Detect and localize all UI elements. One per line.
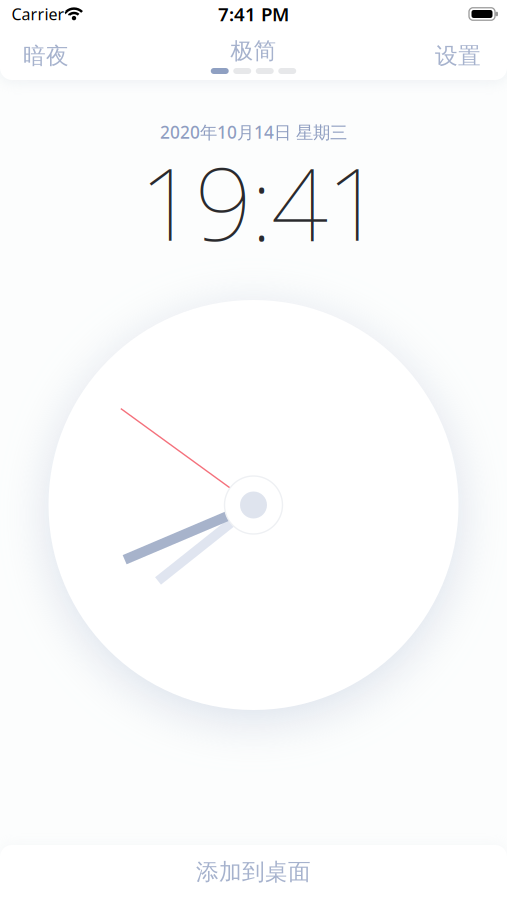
staticText: 添加到桌面 xyxy=(196,858,311,886)
staticText: Carrier xyxy=(11,3,64,25)
staticText: 暗夜 xyxy=(23,42,69,70)
staticText: 19:41 xyxy=(139,136,383,268)
button[interactable]: 设置 xyxy=(420,34,496,78)
staticText: 2020年10月14日 星期三 xyxy=(160,120,347,143)
button[interactable]: 添加到桌面 xyxy=(143,850,363,894)
staticText: 7:41 PM xyxy=(218,2,289,26)
staticText: 设置 xyxy=(435,42,481,70)
staticText: 极简 xyxy=(230,37,276,65)
button[interactable]: 暗夜 xyxy=(8,34,84,78)
